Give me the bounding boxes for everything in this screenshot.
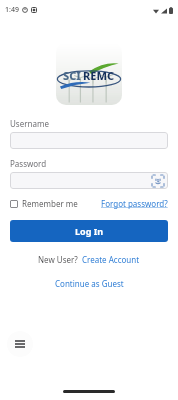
staticText: Continue as Guest	[55, 278, 124, 289]
button[interactable]: Face ID login	[152, 175, 164, 187]
button[interactable]: Menu	[7, 331, 33, 357]
button[interactable]: Create Account	[82, 254, 140, 265]
staticText: Log In	[75, 225, 104, 237]
button[interactable]: Log In	[10, 220, 168, 242]
staticText: New User?	[38, 254, 78, 265]
button[interactable]: Remember me	[10, 198, 78, 209]
staticText: 1:49	[5, 5, 19, 15]
staticText: SCI	[63, 68, 81, 83]
button[interactable]	[10, 132, 168, 149]
button[interactable]: Face ID login	[10, 172, 168, 189]
staticText: REMC	[83, 68, 115, 83]
staticText: Remember me	[22, 198, 78, 209]
staticText: Forgot password?	[101, 198, 168, 209]
staticText: Password	[10, 158, 47, 169]
staticText: Create Account	[82, 254, 140, 265]
button[interactable]: Forgot password?	[101, 198, 168, 209]
button[interactable]: Continue as Guest	[55, 278, 124, 289]
staticText: Username	[10, 118, 49, 129]
